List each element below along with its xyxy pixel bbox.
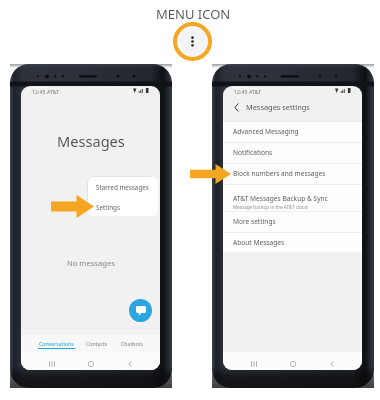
button[interactable]: Back — [321, 355, 343, 370]
staticText: About Messages — [233, 238, 285, 247]
staticText: Block numbers and messages — [233, 169, 326, 178]
button[interactable]: Settings — [88, 197, 158, 216]
staticText: 12:45 AT&T — [234, 88, 262, 95]
staticText: Contacts — [86, 340, 108, 347]
button[interactable]: Conversations — [38, 340, 75, 349]
staticText: Conversations — [39, 340, 74, 347]
staticText: 12:45 AT&T — [32, 88, 60, 95]
button[interactable]: Recent apps — [41, 355, 63, 370]
button[interactable]: Starred messages — [88, 177, 158, 197]
staticText: Chatbots — [121, 340, 143, 347]
button[interactable]: Chatbots — [120, 340, 143, 347]
staticText: Advanced Messaging — [233, 127, 299, 136]
button[interactable]: AT&T Messages Backup & Sync — [223, 184, 362, 211]
button[interactable]: About Messages — [223, 232, 362, 253]
staticText: Message backup in the AT&T cloud — [233, 204, 308, 210]
button[interactable]: Contacts — [85, 340, 108, 347]
button[interactable]: Home — [80, 355, 102, 370]
button[interactable]: More settings — [223, 211, 362, 232]
staticText: Messages — [57, 131, 125, 151]
button[interactable]: New message — [129, 299, 152, 322]
button[interactable]: Recent apps — [243, 355, 265, 370]
staticText: AT&T Messages Backup & Sync — [233, 194, 328, 203]
staticText: Starred messages — [96, 183, 149, 192]
button[interactable]: Notifications — [223, 142, 362, 163]
staticText: More settings — [233, 217, 276, 226]
staticText: No messages — [67, 258, 115, 268]
staticText: Notifications — [233, 148, 273, 157]
staticText: MENU ICON — [156, 5, 231, 23]
button[interactable]: Block numbers and messages — [223, 163, 362, 184]
button[interactable]: Back — [228, 99, 244, 115]
button[interactable]: Advanced Messaging — [223, 121, 362, 142]
staticText: Settings — [96, 203, 120, 212]
button[interactable]: Back — [119, 355, 141, 370]
button[interactable]: Home — [282, 355, 304, 370]
staticText: Messages settings — [246, 102, 310, 112]
